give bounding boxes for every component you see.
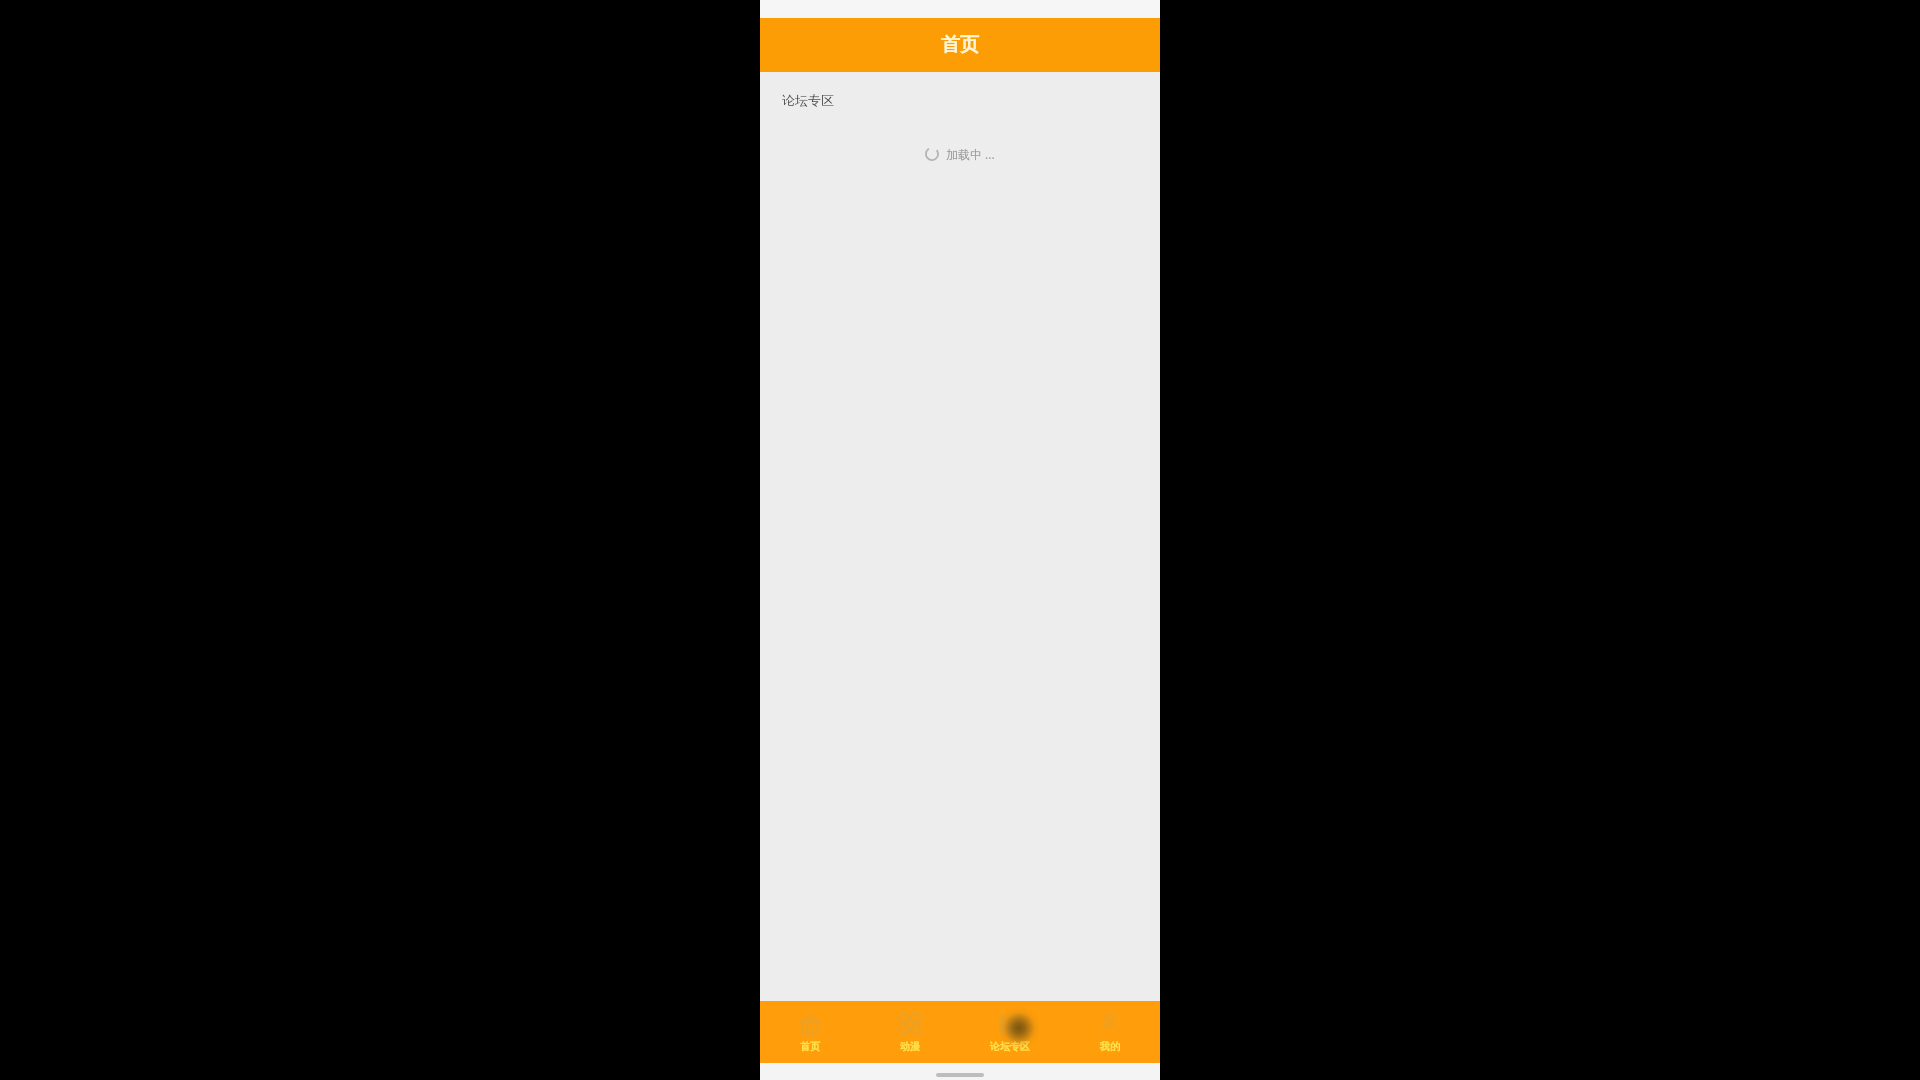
staticText: 我的 (1100, 1040, 1120, 1053)
button[interactable]: 首页 (760, 1001, 860, 1063)
other: 论坛专区 (999, 1013, 1021, 1035)
staticText: 论坛专区 (782, 92, 834, 108)
button[interactable]: 我的 (1060, 1001, 1160, 1063)
staticText: 加载中 ... (946, 146, 995, 162)
staticText: 首页 (800, 1040, 820, 1053)
button[interactable]: 动漫 (860, 1001, 960, 1063)
other: 我的 (1099, 1013, 1121, 1035)
other: 首页 (799, 1013, 821, 1035)
staticText: 动漫 (900, 1040, 920, 1053)
staticText: 首页 (941, 33, 979, 57)
other: 动漫 (899, 1013, 921, 1035)
staticText: 论坛专区 (990, 1040, 1030, 1053)
button[interactable]: 论坛专区 (960, 1001, 1060, 1063)
